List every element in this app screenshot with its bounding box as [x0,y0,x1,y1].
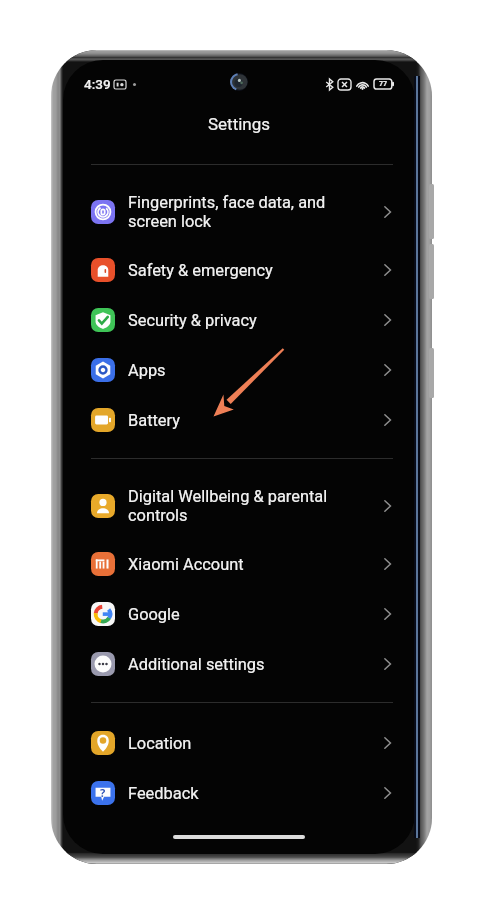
staticText: Security & privacy [128,311,384,330]
staticText: Xiaomi Account [128,555,384,574]
button[interactable]: Apps [63,345,415,395]
staticText: 77 [379,79,388,89]
staticText: Battery [128,411,384,430]
button[interactable]: ? [63,768,415,818]
staticText: 4:39 [84,76,111,92]
staticText: Location [128,734,384,753]
staticText: Google [128,605,384,624]
staticText: Digital Wellbeing & parental controls [128,487,384,525]
staticText: Apps [128,361,384,380]
button[interactable]: Battery [63,395,415,445]
button[interactable]: Additional settings [63,639,415,689]
button[interactable]: Xiaomi Account [63,539,415,589]
button[interactable]: Security & privacy [63,295,415,345]
button[interactable]: Fingerprints, face data, and screen lock [63,179,415,245]
staticText: Feedback [128,784,384,803]
staticText: ? [100,785,106,800]
button[interactable]: Safety & emergency [63,245,415,295]
staticText: Additional settings [128,655,384,674]
staticText: Settings [208,114,271,134]
button[interactable]: Location [63,718,415,768]
button[interactable]: Google [63,589,415,639]
button[interactable]: Digital Wellbeing & parental controls [63,473,415,539]
staticText: Fingerprints, face data, and screen lock [128,193,384,231]
staticText: Safety & emergency [128,261,384,280]
